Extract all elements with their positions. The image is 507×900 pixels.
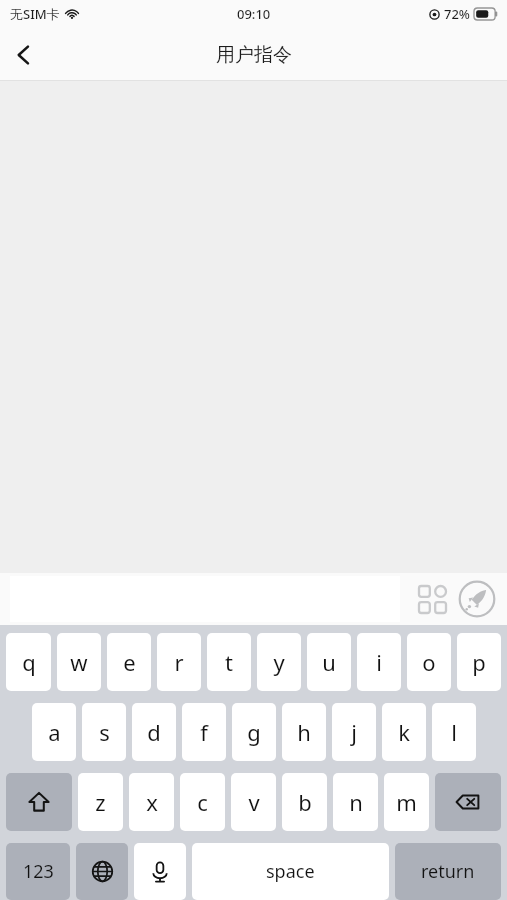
staticText: z xyxy=(95,787,106,817)
staticText: a xyxy=(48,717,61,747)
button[interactable]: g xyxy=(232,703,276,761)
button[interactable]: Send xyxy=(455,577,499,621)
button[interactable]: i xyxy=(357,633,401,691)
staticText: y xyxy=(273,647,285,677)
button[interactable]: q xyxy=(6,633,51,691)
staticText: s xyxy=(99,717,110,747)
button[interactable]: m xyxy=(384,773,429,831)
button[interactable]: n xyxy=(333,773,378,831)
button[interactable]: d xyxy=(132,703,176,761)
staticText: t xyxy=(225,647,233,677)
button[interactable]: f xyxy=(182,703,226,761)
staticText: i xyxy=(376,647,382,677)
staticText: c xyxy=(197,787,208,817)
staticText: x xyxy=(146,787,158,817)
staticText: r xyxy=(174,647,184,677)
button[interactable]: l xyxy=(432,703,476,761)
staticText: o xyxy=(422,647,436,677)
staticText: 无SIM卡 xyxy=(10,5,60,23)
staticText: h xyxy=(297,717,311,747)
button[interactable]: c xyxy=(180,773,225,831)
staticText: k xyxy=(398,717,410,747)
staticText: f xyxy=(200,717,208,747)
button[interactable]: More options xyxy=(411,578,453,620)
button[interactable]: w xyxy=(57,633,101,691)
button[interactable]: u xyxy=(307,633,351,691)
staticText: m xyxy=(396,787,417,817)
button[interactable]: x xyxy=(129,773,174,831)
staticText: 09:10 xyxy=(237,5,271,23)
staticText: l xyxy=(451,717,457,747)
staticText: 用户指令 xyxy=(216,43,292,67)
button[interactable]: k xyxy=(382,703,426,761)
staticText: b xyxy=(298,787,312,817)
button[interactable]: Back xyxy=(0,31,48,79)
staticText: p xyxy=(472,647,486,677)
button[interactable]: Change keyboard language xyxy=(76,843,128,900)
button[interactable]: z xyxy=(78,773,123,831)
button[interactable]: return xyxy=(395,843,501,900)
button[interactable]: Voice input xyxy=(134,843,186,900)
button[interactable]: Backspace xyxy=(435,773,501,831)
button[interactable]: h xyxy=(282,703,326,761)
button[interactable]: b xyxy=(282,773,327,831)
button[interactable]: a xyxy=(32,703,76,761)
button[interactable]: r xyxy=(157,633,201,691)
button[interactable]: Shift xyxy=(6,773,72,831)
button[interactable]: j xyxy=(332,703,376,761)
staticText: d xyxy=(147,717,161,747)
staticText: space xyxy=(266,859,315,884)
button[interactable]: s xyxy=(82,703,126,761)
button[interactable]: 123 xyxy=(6,843,70,900)
button[interactable]: o xyxy=(407,633,451,691)
staticText: u xyxy=(322,647,336,677)
button[interactable]: p xyxy=(457,633,501,691)
staticText: g xyxy=(247,717,261,747)
button[interactable]: space xyxy=(192,843,389,900)
staticText: 72% xyxy=(444,5,470,23)
button[interactable]: e xyxy=(107,633,151,691)
staticText: 123 xyxy=(23,859,54,884)
button[interactable]: y xyxy=(257,633,301,691)
staticText: n xyxy=(349,787,363,817)
button[interactable]: t xyxy=(207,633,251,691)
staticText: e xyxy=(123,647,136,677)
staticText: w xyxy=(70,647,88,677)
staticText: q xyxy=(22,647,36,677)
staticText: v xyxy=(248,787,260,817)
staticText: j xyxy=(351,717,357,747)
staticText: return xyxy=(421,859,475,884)
button[interactable]: v xyxy=(231,773,276,831)
